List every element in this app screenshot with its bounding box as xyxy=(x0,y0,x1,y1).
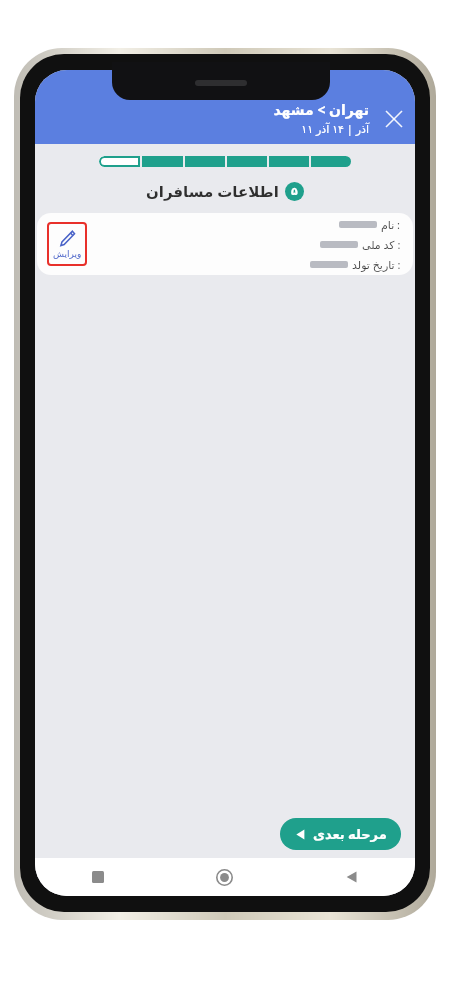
button[interactable]: Home xyxy=(161,858,288,896)
staticText: ویرایش xyxy=(53,249,82,259)
staticText: تاریخ تولد : xyxy=(352,257,401,272)
button[interactable]: Back xyxy=(288,858,415,896)
button[interactable]: نام : xyxy=(37,213,413,275)
staticText: اطلاعات مسافران xyxy=(146,181,279,201)
staticText: کد ملی : xyxy=(362,237,401,252)
button[interactable]: مرحله بعدی xyxy=(280,818,401,850)
staticText: ۵ xyxy=(291,185,298,198)
staticText: ۱۱ آذر | ۱۴ آذر xyxy=(301,121,369,136)
button[interactable]: Recents xyxy=(35,858,161,896)
staticText: مرحله بعدی xyxy=(313,825,387,843)
staticText: تهران > مشهد xyxy=(273,100,369,119)
staticText: نام : xyxy=(381,217,401,232)
button[interactable]: Close xyxy=(379,104,409,134)
button[interactable]: ویرایش xyxy=(47,222,87,266)
